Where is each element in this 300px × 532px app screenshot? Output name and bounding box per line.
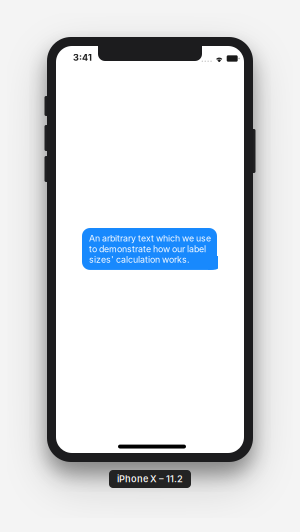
staticText: 3:41 [73,52,92,63]
button[interactable]: iPhone X – 11.2 [109,470,191,488]
staticText: iPhone X – 11.2 [117,473,183,484]
staticText: An arbitrary text which we use to demons… [89,233,211,265]
